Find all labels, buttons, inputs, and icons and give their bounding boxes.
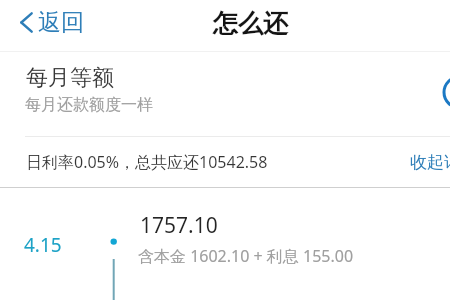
button[interactable]: 每月等额 bbox=[0, 51, 450, 136]
staticText: 每月等额 bbox=[26, 64, 114, 92]
staticText: 含本金 1602.10 + 利息 155.00 bbox=[138, 245, 354, 267]
button[interactable]: 4.15 bbox=[0, 189, 450, 300]
staticText: 返回 bbox=[38, 8, 84, 37]
button[interactable]: 收起详情 bbox=[404, 146, 450, 179]
staticText: 1757.10 bbox=[140, 211, 218, 240]
staticText: 4.15 bbox=[24, 232, 62, 258]
staticText: 日利率0.05%，总共应还10542.58 bbox=[26, 151, 268, 173]
staticText: 收起详情 bbox=[410, 152, 450, 173]
other: 已选择 Selected bbox=[0, 51, 450, 136]
staticText: 怎么还 bbox=[213, 8, 288, 39]
staticText: 每月还款额度一样 bbox=[25, 95, 153, 115]
button[interactable]: 返回 Back bbox=[16, 5, 88, 40]
